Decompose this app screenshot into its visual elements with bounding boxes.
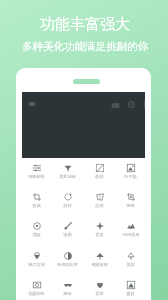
button[interactable]: 视频效果 bbox=[84, 248, 115, 275]
button[interactable]: 喜爱 bbox=[84, 277, 115, 300]
staticText: 色调对比度 bbox=[57, 262, 78, 267]
button[interactable]: 剪裁 bbox=[21, 189, 52, 216]
button[interactable]: 背景 bbox=[84, 218, 115, 245]
staticText: 剪裁 bbox=[32, 203, 41, 208]
button[interactable]: 魅力女神 bbox=[21, 248, 52, 275]
staticText: 美化滤镜 bbox=[59, 174, 76, 179]
button[interactable]: 墨镜 bbox=[52, 277, 83, 300]
button[interactable]: 旋转 bbox=[52, 189, 83, 216]
staticText: 白平衡 bbox=[124, 174, 137, 179]
button[interactable]: 拉伸 bbox=[84, 189, 115, 216]
staticText: 素材 bbox=[126, 291, 135, 296]
staticText: HDR效果 bbox=[122, 232, 140, 238]
button[interactable]: 素材 bbox=[115, 277, 146, 300]
staticText: 调整 bbox=[126, 203, 135, 208]
staticText: 魅力女神 bbox=[28, 262, 45, 267]
staticText: 墨镜 bbox=[63, 291, 72, 296]
staticText: 美妆 bbox=[126, 262, 135, 267]
staticText: 曲线 bbox=[95, 174, 104, 179]
staticText: 涂鸦 bbox=[63, 232, 72, 237]
button[interactable]: 美化滤镜 bbox=[52, 160, 83, 187]
button[interactable]: 美颜相机 bbox=[21, 277, 52, 300]
button[interactable]: 美妆 bbox=[115, 248, 146, 275]
staticText: 美颜相机 bbox=[28, 291, 45, 296]
staticText: 喜爱 bbox=[95, 291, 104, 296]
button[interactable]: 曲线 bbox=[84, 160, 115, 187]
button[interactable]: 调整贴纸 bbox=[21, 160, 52, 187]
button[interactable]: HDR效果 bbox=[115, 218, 146, 245]
staticText: 消除 bbox=[32, 232, 41, 237]
staticText: 多种美化功能满足挑剔的你 bbox=[1, 40, 168, 53]
button[interactable]: 白平衡 bbox=[115, 160, 146, 187]
button[interactable]: 调整 bbox=[115, 189, 146, 216]
staticText: 视频效果 bbox=[91, 262, 108, 267]
button[interactable]: 涂鸦 bbox=[52, 218, 83, 245]
staticText: 旋转 bbox=[63, 203, 72, 208]
staticText: 功能丰富强大 bbox=[1, 15, 168, 34]
staticText: 背景 bbox=[95, 232, 104, 237]
button[interactable]: 色调对比度 bbox=[52, 248, 83, 275]
staticText: 拉伸 bbox=[95, 203, 104, 208]
staticText: 调整贴纸 bbox=[28, 174, 45, 179]
button[interactable]: 消除 bbox=[21, 218, 52, 245]
